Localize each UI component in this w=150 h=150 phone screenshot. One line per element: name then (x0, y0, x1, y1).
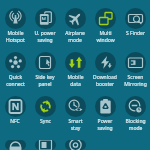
button[interactable]: Sync (30, 88, 60, 132)
staticText: Download booster (93, 74, 117, 87)
button[interactable]: Power saving (90, 88, 120, 132)
staticText: Blocking mode (125, 118, 146, 131)
button[interactable]: NFC (0, 88, 30, 132)
button[interactable]: Screen Mirroring (120, 44, 150, 88)
button[interactable]: Smart stay (60, 88, 90, 132)
button[interactable]: S Finder (120, 0, 150, 44)
button[interactable]: Download booster (90, 44, 120, 88)
staticText: Sync (40, 118, 51, 125)
staticText: Smart stay (68, 118, 83, 131)
staticText: Side key panel (35, 74, 55, 87)
button[interactable]: Airplane mode (60, 0, 90, 44)
staticText: Airplane mode (65, 30, 85, 43)
button[interactable]: Mobile data (60, 44, 90, 88)
button[interactable]: U. power saving (30, 0, 60, 44)
button[interactable]: Multi window (90, 0, 120, 44)
staticText: Multi window (96, 30, 115, 43)
button[interactable]: Side key panel (30, 44, 60, 88)
button[interactable]: Quick connect (0, 44, 30, 88)
staticText: Power saving (97, 118, 113, 131)
staticText: U. power saving (34, 30, 56, 43)
button[interactable]: Location (60, 132, 90, 150)
staticText: Screen Mirroring (124, 74, 147, 87)
button[interactable]: Blocking mode (120, 88, 150, 132)
button[interactable]: Mobile Hotspot (0, 0, 30, 44)
staticText: Mobile data (67, 74, 84, 87)
button[interactable]: Private mode (0, 132, 30, 150)
staticText: Mobile Hotspot (6, 30, 25, 43)
staticText: S Finder (126, 30, 145, 37)
staticText: NFC (10, 118, 20, 125)
staticText: Quick connect (6, 74, 25, 87)
button[interactable]: Reading mode (30, 132, 60, 150)
